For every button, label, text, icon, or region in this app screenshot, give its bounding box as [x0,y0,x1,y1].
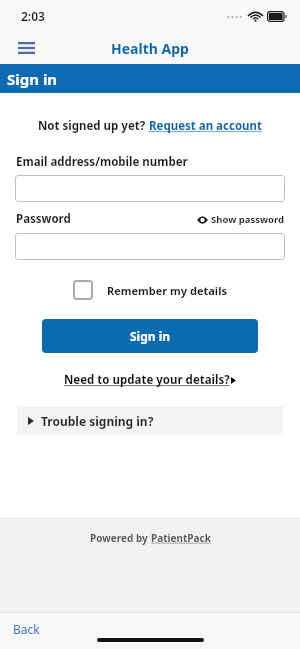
staticText: Sign in [7,69,58,89]
staticText: Trouble signing in? [41,413,154,429]
staticText: Email address/mobile number [16,154,188,170]
button[interactable]: Back [13,621,40,637]
button[interactable]: Show password [197,213,285,226]
staticText: Password [16,211,71,227]
staticText: Request an account [149,118,263,134]
staticText: Need to update your details? [64,372,230,388]
button[interactable]: Need to update your details? [64,372,236,388]
button[interactable]: PatientPack [151,531,211,545]
button[interactable]: Remember my details [73,280,227,300]
button[interactable] [15,175,285,202]
staticText: PatientPack [151,531,211,545]
button[interactable]: Trouble signing in? [17,406,283,435]
button[interactable]: Sign in [42,319,258,353]
staticText: Powered by [90,531,151,545]
button[interactable]: Menu [12,34,40,62]
button[interactable]: Request an account [149,118,263,134]
staticText: 2:03 [21,8,45,24]
staticText: Not signed up yet? [38,118,149,134]
button[interactable] [15,233,285,260]
staticText: Health App [111,39,189,58]
staticText: Sign in [130,328,171,344]
staticText: Show password [211,213,285,226]
staticText: Remember my details [107,283,227,298]
